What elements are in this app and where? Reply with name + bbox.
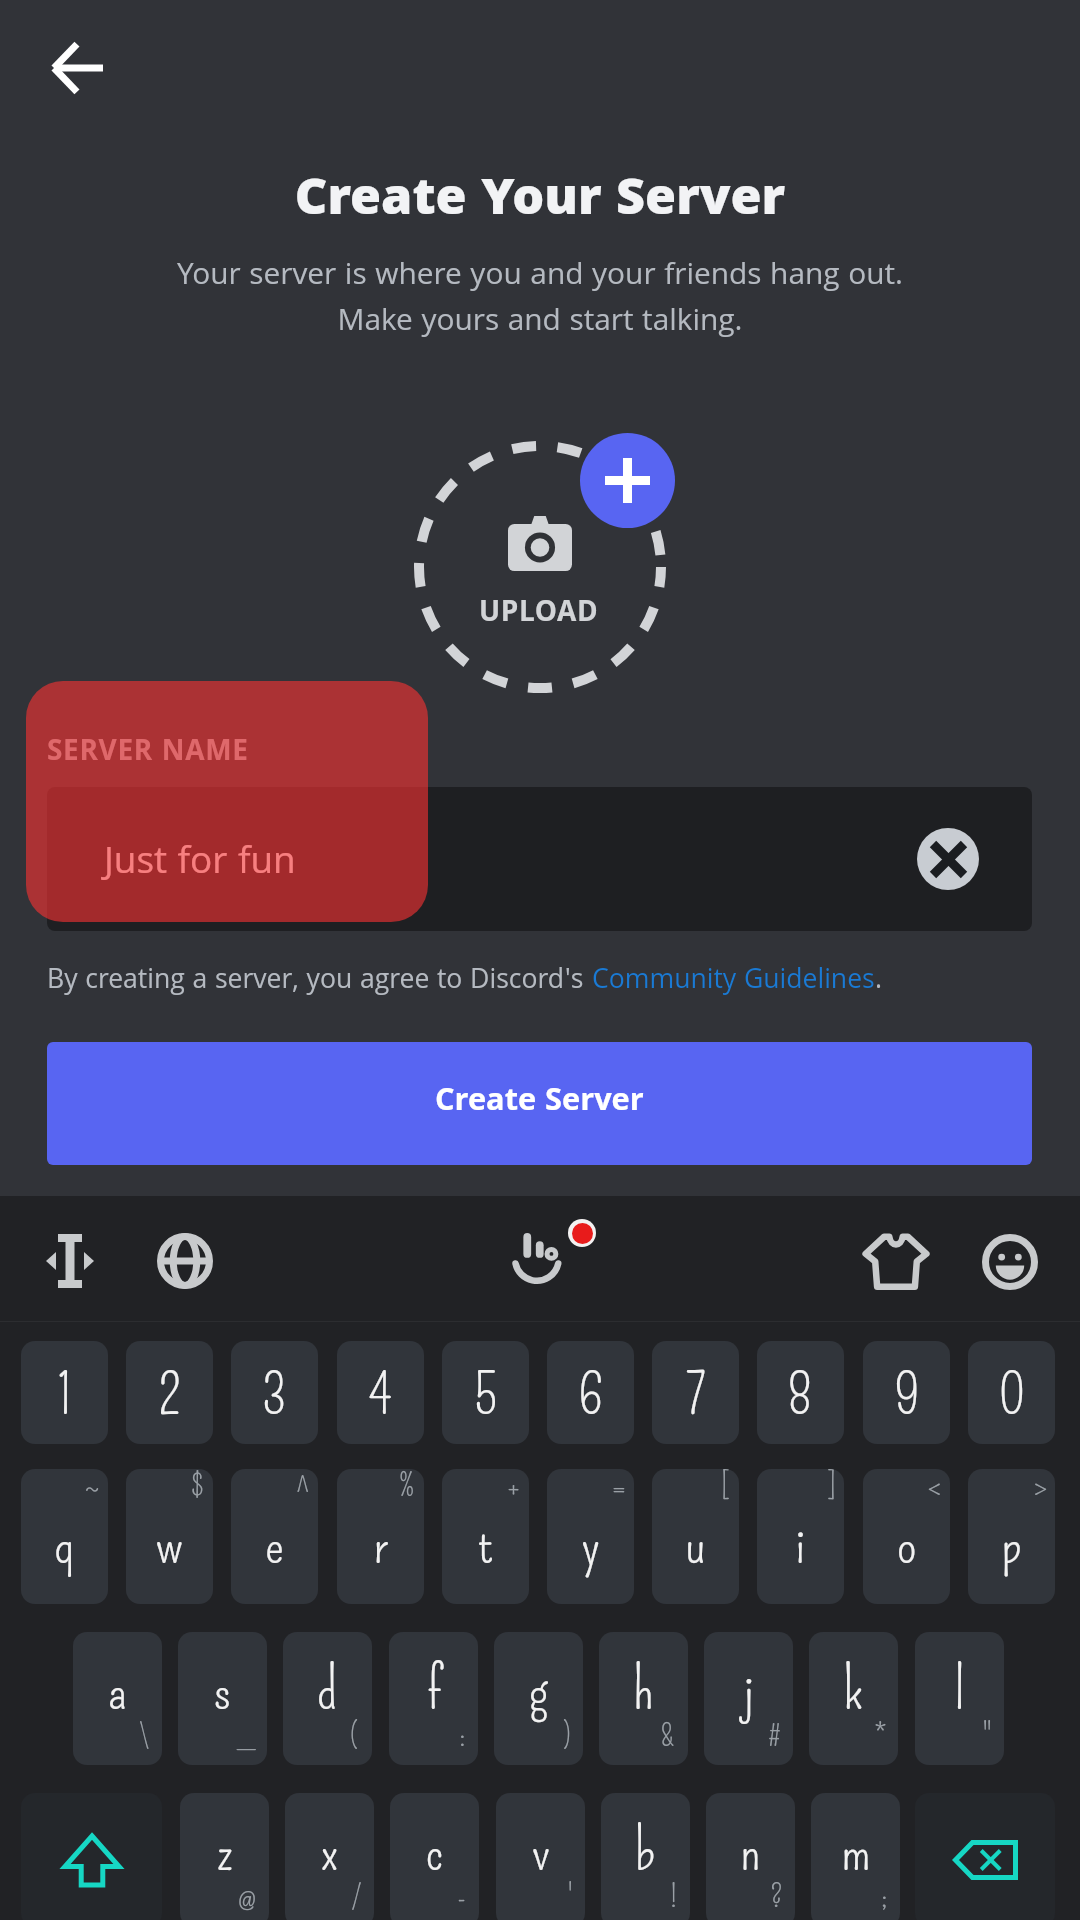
staticText: ' — [568, 1879, 573, 1915]
button[interactable]: x — [285, 1793, 374, 1920]
staticText: p — [1001, 1511, 1022, 1578]
button[interactable]: u — [652, 1469, 739, 1604]
staticText: Just for fun — [104, 833, 296, 896]
button[interactable]: 1 — [21, 1341, 108, 1444]
staticText: q — [54, 1511, 75, 1578]
button[interactable]: 0 — [968, 1341, 1055, 1444]
staticText: a — [108, 1657, 127, 1724]
button[interactable]: s — [178, 1632, 267, 1765]
staticText: s — [213, 1657, 232, 1724]
button[interactable]: i — [757, 1469, 844, 1604]
button[interactable]: o — [863, 1469, 950, 1604]
button[interactable]: 8 — [757, 1341, 844, 1444]
staticText: d — [317, 1657, 338, 1724]
button[interactable]: 7 — [652, 1341, 739, 1444]
staticText: ~ — [85, 1469, 100, 1504]
button[interactable]: d — [283, 1632, 372, 1765]
staticText: 3 — [262, 1362, 287, 1429]
staticText: ( — [350, 1718, 360, 1754]
button[interactable]: Back — [30, 20, 126, 116]
button[interactable]: v — [496, 1793, 585, 1920]
button[interactable]: Just for fun — [47, 787, 1032, 931]
staticText: ? — [770, 1879, 783, 1915]
staticText: ] — [826, 1469, 836, 1504]
button[interactable]: Change language — [139, 1215, 231, 1307]
button[interactable]: b — [601, 1793, 690, 1920]
button[interactable]: a — [73, 1632, 162, 1765]
staticText: : — [459, 1718, 466, 1754]
staticText: 9 — [893, 1362, 921, 1429]
staticText: = — [612, 1469, 626, 1504]
staticText: Your server is where you and your friend… — [0, 252, 1080, 349]
button[interactable]: e — [231, 1469, 318, 1604]
staticText: & — [660, 1718, 676, 1754]
staticText: ^ — [296, 1469, 310, 1504]
button[interactable]: g — [494, 1632, 583, 1765]
button[interactable]: Clear text — [917, 828, 979, 890]
button[interactable]: 3 — [231, 1341, 318, 1444]
button[interactable]: t — [442, 1469, 529, 1604]
staticText: - — [457, 1879, 467, 1915]
staticText: $ — [191, 1469, 205, 1504]
staticText: b — [635, 1818, 656, 1885]
button[interactable]: z — [180, 1793, 269, 1920]
button[interactable]: l — [915, 1632, 1004, 1765]
staticText: Create Server — [435, 1077, 644, 1130]
staticText: n — [740, 1818, 761, 1885]
staticText: ) — [562, 1718, 571, 1754]
staticText: h — [633, 1657, 654, 1724]
staticText: 5 — [473, 1362, 498, 1429]
staticText: l — [954, 1657, 965, 1724]
staticText: # — [768, 1718, 781, 1754]
staticText: 7 — [685, 1362, 707, 1429]
staticText: By creating a server, you agree to Disco… — [47, 959, 592, 1005]
button[interactable]: Upload server icon — [412, 439, 668, 695]
staticText: SERVER NAME — [47, 730, 249, 778]
staticText: UPLOAD — [479, 591, 599, 639]
staticText: k — [843, 1657, 864, 1724]
staticText: o — [897, 1511, 917, 1578]
staticText: j — [743, 1657, 755, 1724]
button[interactable]: Community Guidelines — [592, 959, 875, 1005]
button[interactable]: Keyboard settings — [494, 1213, 586, 1305]
button[interactable]: r — [337, 1469, 424, 1604]
button[interactable]: Create Server — [47, 1042, 1032, 1165]
button[interactable]: Add server image — [580, 433, 675, 528]
button[interactable]: 5 — [442, 1341, 529, 1444]
button[interactable]: y — [547, 1469, 634, 1604]
staticText: 4 — [369, 1362, 392, 1429]
staticText: ! — [670, 1879, 678, 1915]
staticText: u — [685, 1511, 706, 1578]
button[interactable]: Themes — [850, 1215, 942, 1307]
button[interactable]: 2 — [126, 1341, 213, 1444]
staticText: y — [581, 1511, 600, 1578]
staticText: % — [399, 1469, 416, 1504]
button[interactable]: Shift — [21, 1793, 162, 1920]
staticText: _ — [238, 1718, 255, 1754]
button[interactable]: Backspace — [915, 1793, 1055, 1920]
button[interactable]: f — [389, 1632, 478, 1765]
staticText: e — [265, 1511, 284, 1578]
button[interactable]: 6 — [547, 1341, 634, 1444]
button[interactable]: Emoji — [964, 1216, 1056, 1308]
staticText: > — [1033, 1469, 1047, 1504]
staticText: @ — [238, 1879, 257, 1915]
staticText: v — [532, 1818, 550, 1885]
button[interactable]: m — [811, 1793, 900, 1920]
button[interactable]: 9 — [863, 1341, 950, 1444]
button[interactable]: n — [706, 1793, 795, 1920]
button[interactable]: h — [599, 1632, 688, 1765]
button[interactable]: w — [126, 1469, 213, 1604]
staticText: 6 — [577, 1362, 605, 1429]
staticText: w — [156, 1511, 183, 1578]
button[interactable]: k — [809, 1632, 898, 1765]
button[interactable]: c — [390, 1793, 479, 1920]
staticText: . — [875, 959, 883, 1005]
staticText: [ — [721, 1469, 731, 1504]
button[interactable]: q — [21, 1469, 108, 1604]
button[interactable]: p — [968, 1469, 1055, 1604]
staticText: 0 — [998, 1362, 1026, 1429]
button[interactable]: j — [704, 1632, 793, 1765]
button[interactable]: 4 — [337, 1341, 424, 1444]
button[interactable]: Move cursor — [24, 1215, 116, 1307]
